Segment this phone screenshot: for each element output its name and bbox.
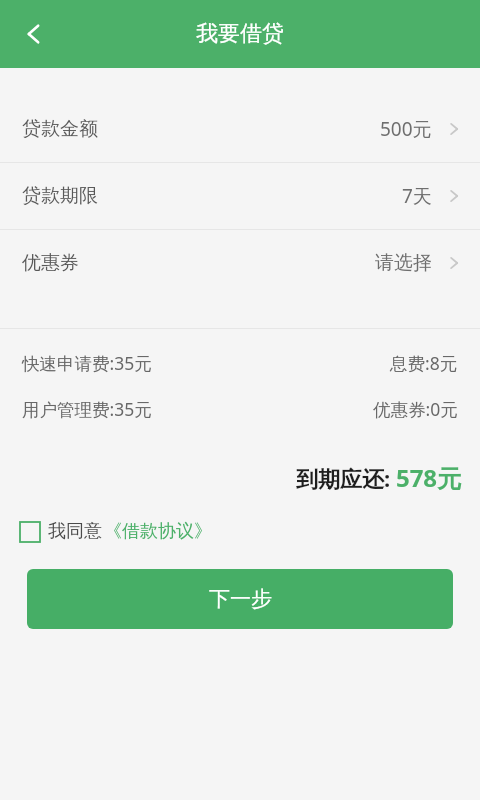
staticText: 贷款金额 (22, 117, 98, 141)
staticText: 我同意 (48, 520, 102, 543)
staticText: 500元 (380, 116, 432, 142)
button[interactable]: 贷款期限 (0, 163, 480, 229)
button[interactable]: 优惠券 (0, 230, 480, 296)
staticText: 快速申请费:35元 (22, 351, 152, 375)
staticText: 下一步 (209, 586, 272, 612)
staticText: 优惠券:0元 (373, 397, 458, 421)
staticText: 贷款期限 (22, 184, 98, 208)
staticText: 优惠券 (22, 251, 79, 275)
staticText: 我要借贷 (196, 20, 284, 48)
staticText: 7天 (402, 183, 432, 209)
staticText: 请选择 (375, 251, 432, 275)
staticText: 用户管理费:35元 (22, 397, 152, 421)
staticText: 息费:8元 (390, 351, 458, 375)
button[interactable]: Back (8, 8, 60, 60)
button[interactable]: 《借款协议》 (104, 520, 212, 543)
staticText: 到期应还: 578元 (296, 461, 462, 494)
button[interactable]: 贷款金额 (0, 96, 480, 162)
button[interactable]: 我同意 (20, 520, 212, 543)
button[interactable]: 下一步 (27, 569, 453, 629)
